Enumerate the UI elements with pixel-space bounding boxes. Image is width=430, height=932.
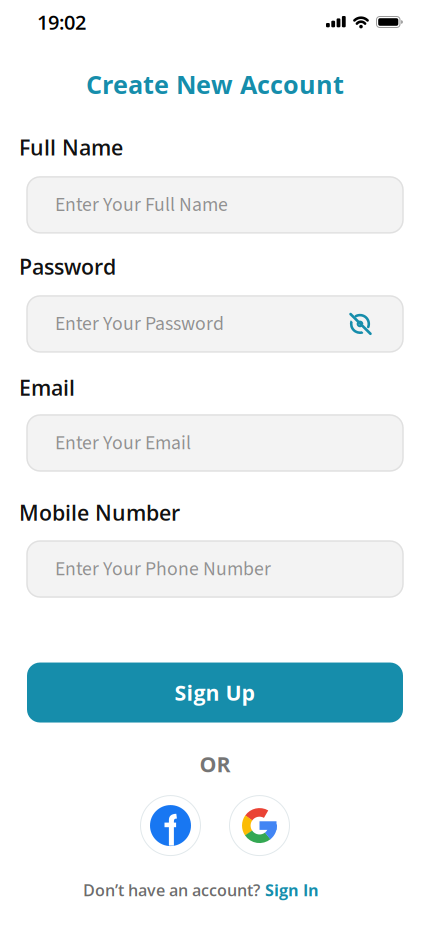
staticText: OR	[199, 749, 230, 779]
staticText: Create New Account	[86, 67, 344, 101]
button[interactable]: Sign In	[265, 879, 319, 901]
staticText: Enter Your Phone Number	[55, 555, 271, 583]
staticText: Mobile Number	[19, 498, 180, 527]
staticText: 19:02	[37, 8, 86, 36]
staticText: Enter Your Full Name	[55, 191, 228, 219]
staticText: Don’t have an account?	[83, 879, 260, 901]
staticText: Email	[19, 373, 75, 402]
button[interactable]: Show password	[347, 311, 373, 337]
staticText: Password	[19, 252, 116, 281]
button[interactable]: Sign up with Google	[229, 796, 289, 856]
staticText: Enter Your Password	[55, 310, 224, 338]
staticText: Enter Your Email	[55, 429, 191, 457]
button[interactable]: Sign Up	[27, 662, 403, 722]
staticText: Sign In	[265, 879, 319, 901]
staticText: Sign Up	[174, 678, 255, 707]
button[interactable]: Sign up with Facebook	[140, 796, 200, 856]
staticText: Full Name	[19, 133, 123, 162]
